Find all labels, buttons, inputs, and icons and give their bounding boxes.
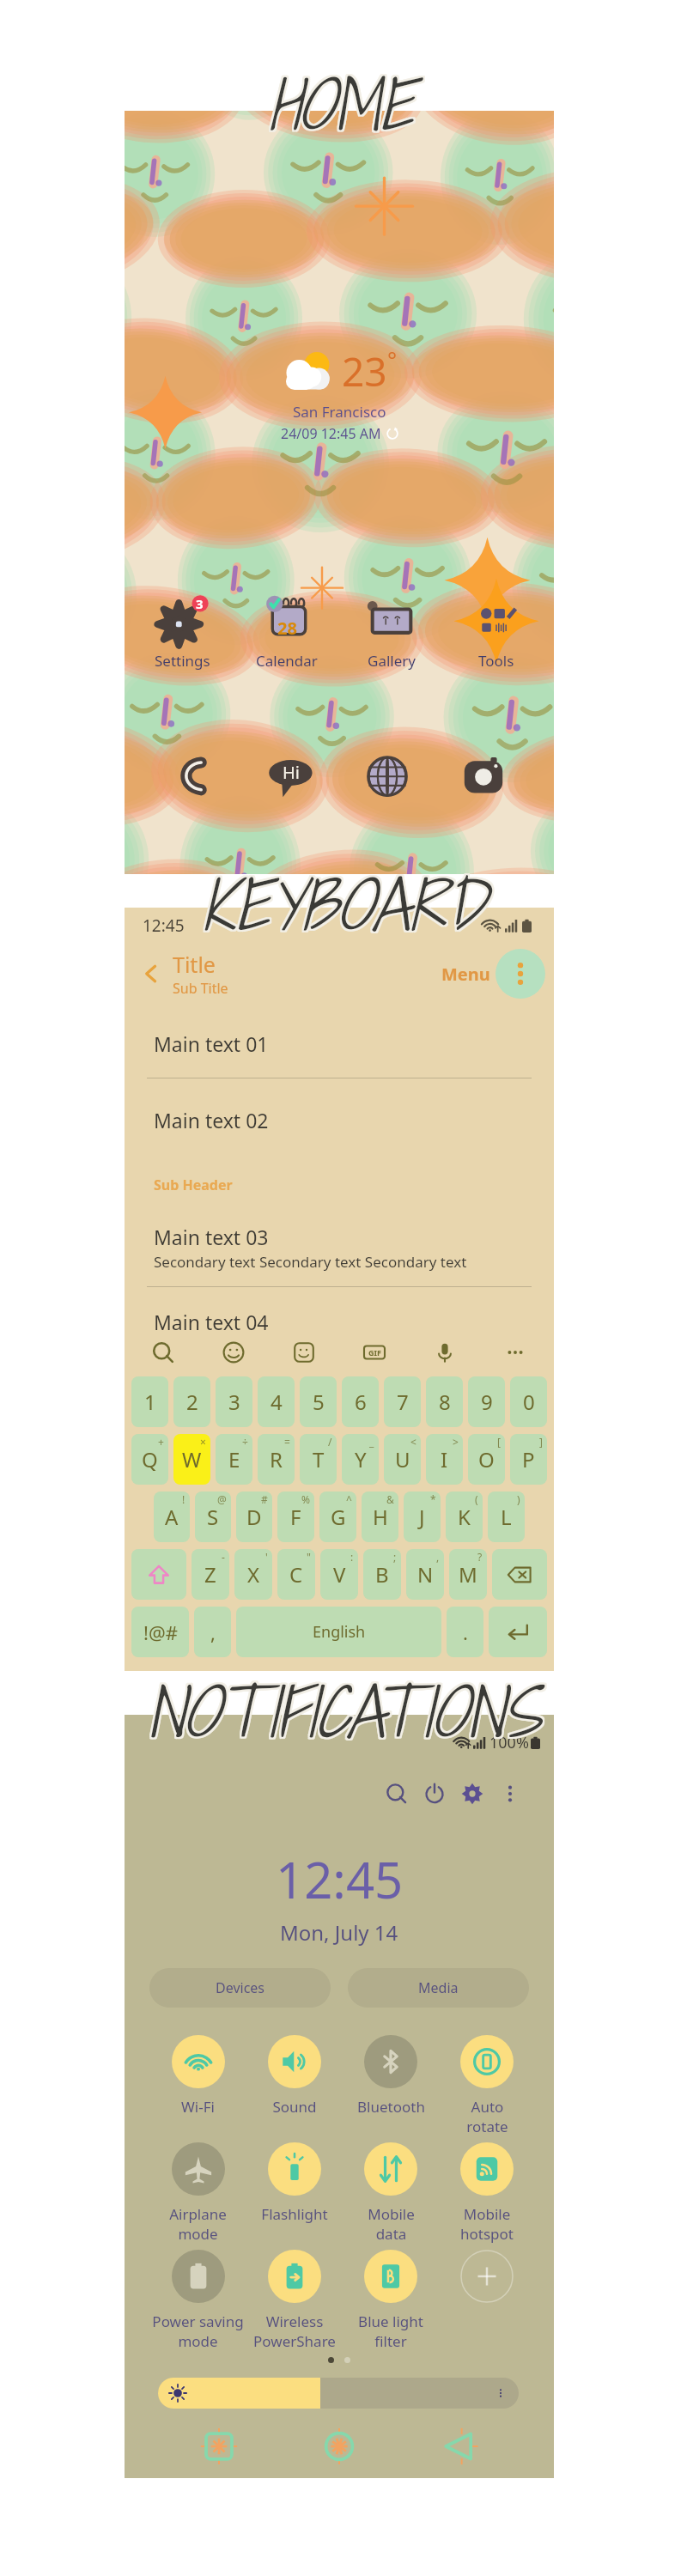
button[interactable]: A (154, 1492, 190, 1542)
button[interactable] (439, 2250, 535, 2357)
button[interactable]: 7 (384, 1376, 421, 1427)
button[interactable]: Main text 02 (125, 1078, 554, 1161)
button[interactable]: Enter (489, 1607, 547, 1657)
staticText: % (301, 1492, 310, 1506)
button[interactable]: Bluetooth (343, 2035, 439, 2142)
button[interactable]: Settings (453, 1775, 491, 1813)
button[interactable]: B (363, 1549, 401, 1600)
button[interactable]: More options (495, 949, 545, 999)
staticText: !@# (143, 1619, 178, 1645)
button[interactable]: , (194, 1607, 231, 1657)
button[interactable]: N (406, 1549, 444, 1600)
button[interactable]: Power (416, 1775, 453, 1813)
button[interactable]: Emoji (221, 1340, 246, 1365)
button[interactable]: V (320, 1549, 358, 1600)
button[interactable]: Search (378, 1775, 416, 1813)
button[interactable]: I (426, 1434, 463, 1485)
button[interactable]: J (404, 1492, 441, 1542)
button[interactable]: 6 (342, 1376, 379, 1427)
button[interactable]: Wireless PowerShare (246, 2250, 343, 2357)
button[interactable]: Backspace (492, 1549, 547, 1600)
button[interactable]: E (216, 1434, 252, 1485)
button[interactable]: Stickers (291, 1340, 317, 1365)
button[interactable]: P (510, 1434, 547, 1485)
button[interactable]: Airplane mode (149, 2142, 246, 2250)
button[interactable]: F (277, 1492, 314, 1542)
button[interactable]: Wi-Fi (149, 2035, 246, 2142)
button[interactable]: Power saving mode (149, 2250, 246, 2357)
button[interactable]: Shift (131, 1549, 186, 1600)
staticText: 6 (355, 1388, 367, 1416)
button[interactable]: T (300, 1434, 337, 1485)
staticText: H (373, 1503, 388, 1531)
staticText: Media (418, 1978, 459, 1997)
button[interactable]: Sound (246, 2035, 343, 2142)
button[interactable]: L (488, 1492, 525, 1542)
button[interactable]: Mobile hotspot (439, 2142, 535, 2250)
button[interactable]: 0 (510, 1376, 547, 1427)
button[interactable]: Menu (438, 963, 494, 986)
button[interactable]: 5 (300, 1376, 337, 1427)
button[interactable]: Q (131, 1434, 168, 1485)
button[interactable]: H (362, 1492, 398, 1542)
staticText: L (501, 1503, 512, 1531)
button[interactable]: Messages (265, 750, 317, 801)
staticText: KEYBOARD (88, 857, 603, 949)
button[interactable]: 4 (258, 1376, 295, 1427)
button[interactable]: Mobile data (343, 2142, 439, 2250)
staticText: 2 (186, 1388, 198, 1416)
button[interactable]: 2 (173, 1376, 210, 1427)
button[interactable]: Flashlight (246, 2142, 343, 2250)
staticText: Bluetooth (357, 2097, 425, 2117)
button[interactable]: Home (313, 2421, 365, 2472)
button[interactable]: Devices (149, 1968, 331, 2008)
button[interactable]: C (277, 1549, 315, 1600)
button[interactable]: Voice input (432, 1340, 458, 1365)
button[interactable]: 3 (135, 593, 229, 671)
button[interactable]: Auto rotate (439, 2035, 535, 2142)
button[interactable]: 9 (468, 1376, 505, 1427)
staticText: 7 (397, 1388, 409, 1416)
button[interactable]: Z (192, 1549, 229, 1600)
button[interactable]: Main text 01 (125, 1009, 554, 1078)
button[interactable]: English (236, 1607, 441, 1657)
staticText: KEYBOARD (88, 859, 603, 951)
button[interactable]: GIF (362, 1340, 387, 1365)
button[interactable]: Recents (193, 2421, 245, 2472)
button[interactable]: Internet (362, 750, 413, 801)
staticText: E (228, 1445, 240, 1473)
button[interactable]: Main text 04 (125, 1287, 554, 1356)
button[interactable]: S (195, 1492, 231, 1542)
button[interactable]: More (491, 1775, 529, 1813)
button[interactable]: Media (348, 1968, 529, 2008)
button[interactable]: G (319, 1492, 356, 1542)
button[interactable]: Tools (449, 593, 544, 671)
button[interactable]: Blue light filter (343, 2250, 439, 2357)
button[interactable]: W (173, 1434, 210, 1485)
button[interactable]: D (236, 1492, 272, 1542)
button[interactable]: Back (135, 957, 167, 990)
button[interactable]: R (258, 1434, 295, 1485)
button[interactable]: Search (150, 1340, 176, 1365)
button[interactable]: . (447, 1607, 483, 1657)
button[interactable]: 1 (131, 1376, 168, 1427)
button[interactable]: O (468, 1434, 505, 1485)
button[interactable]: 3 (216, 1376, 252, 1427)
staticText: : (350, 1550, 354, 1564)
button[interactable]: Y (342, 1434, 379, 1485)
button[interactable]: K (446, 1492, 483, 1542)
button[interactable]: 8 (426, 1376, 463, 1427)
button[interactable]: More (502, 1340, 528, 1365)
button[interactable]: Phone (169, 750, 221, 801)
button[interactable]: Main text 03 (125, 1209, 554, 1286)
button[interactable]: Back (434, 2421, 485, 2472)
staticText: 4 (271, 1388, 283, 1416)
staticText: ) (517, 1492, 520, 1506)
button[interactable]: U (384, 1434, 421, 1485)
button[interactable]: Gallery (344, 593, 439, 671)
button[interactable]: 28 (240, 593, 334, 671)
button[interactable]: X (234, 1549, 272, 1600)
button[interactable]: Camera (458, 750, 509, 801)
button[interactable]: M (449, 1549, 487, 1600)
button[interactable]: !@# (131, 1607, 189, 1657)
